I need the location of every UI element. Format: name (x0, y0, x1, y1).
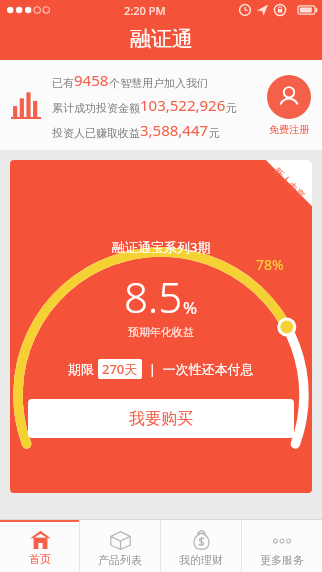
staticText: 首页 (29, 552, 51, 566)
other: 首页 (30, 530, 51, 549)
button[interactable]: 首页 (0, 520, 79, 572)
staticText: 我要购买 (129, 409, 193, 429)
staticText: % (183, 296, 198, 319)
staticText: 期限 (68, 360, 98, 378)
staticText: 投资人已赚取收益 (52, 126, 140, 140)
staticText: 我的理财 (179, 553, 223, 567)
staticText: 元 (226, 101, 237, 115)
button[interactable]: 我的理财 (161, 520, 241, 572)
staticText: 2:20 PM (124, 3, 166, 18)
other: 更多服务 (271, 530, 293, 550)
staticText: 融证通宝系列3期 (112, 238, 211, 256)
staticText: 融证通 (130, 26, 193, 52)
staticText: 已有 (52, 76, 74, 90)
staticText: 个智慧用户加入我们 (109, 76, 208, 90)
staticText: 预期年化收益 (128, 325, 194, 339)
button[interactable]: 78% (10, 160, 312, 493)
button[interactable]: 产品列表 (80, 520, 160, 572)
staticText: 8.5 (124, 268, 183, 325)
staticText: 103,522,926 (140, 95, 226, 115)
staticText: 免费注册 (269, 123, 309, 136)
other: 产品列表 (110, 530, 131, 550)
staticText: 累计成功投资金额 (52, 101, 140, 115)
staticText: 元 (209, 126, 220, 140)
staticText: 更多服务 (260, 553, 304, 567)
button[interactable]: 免费注册 (256, 60, 322, 150)
staticText: 产品列表 (98, 553, 142, 567)
staticText: 78% (256, 255, 284, 274)
staticText: | 一次性还本付息 (142, 360, 254, 378)
other: 我的理财 (192, 530, 211, 550)
staticText: 新人专享 (270, 165, 308, 202)
staticText: 3,588,447 (140, 120, 209, 140)
staticText: 270天 (102, 360, 138, 378)
staticText: 9458 (74, 70, 109, 90)
button[interactable]: 更多服务 (242, 520, 322, 572)
button[interactable]: 我要购买 (28, 399, 294, 438)
